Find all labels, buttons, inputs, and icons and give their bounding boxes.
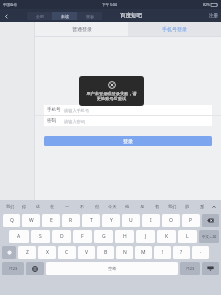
button[interactable]: 中文—英: [199, 230, 219, 243]
button[interactable]: 在: [45, 200, 60, 213]
staticText: 他: [125, 204, 130, 209]
button[interactable]: T: [82, 214, 100, 227]
button[interactable]: 注册: [209, 13, 218, 19]
button[interactable]: W: [22, 214, 40, 227]
button[interactable]: R: [62, 214, 80, 227]
button[interactable]: Change keyboard: [26, 262, 44, 275]
staticText: 我们: [168, 204, 177, 209]
button[interactable]: N: [116, 246, 133, 259]
button[interactable]: K: [157, 230, 176, 243]
staticText: 用户未登录或登录失败，请 更换账号后重试: [86, 91, 137, 101]
button[interactable]: G: [94, 230, 113, 243]
button[interactable]: More suggestions: [210, 200, 218, 213]
button[interactable]: 不: [75, 200, 90, 213]
button[interactable]: V: [78, 246, 95, 259]
button[interactable]: M: [135, 246, 152, 259]
staticText: 密码: [47, 118, 56, 124]
button[interactable]: Y: [102, 214, 120, 227]
staticText: ?123: [186, 266, 195, 271]
button[interactable]: C: [58, 246, 76, 259]
button[interactable]: S: [31, 230, 50, 243]
staticText: 空格: [108, 266, 117, 271]
staticText: ?123: [9, 266, 18, 271]
staticText: G: [102, 233, 106, 240]
button[interactable]: U: [122, 214, 140, 227]
staticText: 不: [80, 204, 85, 209]
button[interactable]: 今天: [105, 200, 120, 213]
button[interactable]: 未读: [52, 12, 77, 20]
button[interactable]: P: [182, 214, 200, 227]
button[interactable]: !: [154, 246, 171, 259]
button[interactable]: Hide keyboard: [202, 262, 219, 275]
button[interactable]: B: [97, 246, 114, 259]
button[interactable]: O: [162, 214, 180, 227]
button[interactable]: J: [136, 230, 155, 243]
staticText: !: [162, 249, 164, 256]
staticText: P: [189, 217, 193, 224]
button[interactable]: 是: [135, 200, 150, 213]
button[interactable]: 登录: [44, 136, 212, 146]
button[interactable]: 他: [120, 200, 135, 213]
button[interactable]: 我们: [3, 200, 17, 213]
staticText: T: [90, 217, 93, 224]
button[interactable]: ?123: [2, 262, 24, 275]
button[interactable]: X: [38, 246, 56, 259]
staticText: 这: [36, 204, 41, 209]
staticText: V: [85, 249, 89, 256]
button[interactable]: 这: [31, 200, 45, 213]
button[interactable]: Shift: [2, 246, 16, 259]
staticText: D: [60, 233, 64, 240]
button[interactable]: Q: [3, 214, 20, 227]
staticText: S: [39, 233, 42, 240]
staticText: 在: [50, 204, 55, 209]
staticText: J: [145, 233, 147, 240]
button[interactable]: 手机号: [47, 105, 209, 115]
staticText: 全部: [36, 14, 44, 19]
staticText: 今天: [108, 204, 117, 209]
staticText: 一: [65, 204, 70, 209]
staticText: 是: [140, 204, 145, 209]
staticText: 手机号登录: [162, 26, 187, 32]
button[interactable]: ?: [173, 246, 190, 259]
staticText: 星标: [86, 14, 94, 19]
button[interactable]: A: [9, 230, 29, 243]
button[interactable]: Z: [18, 246, 36, 259]
staticText: 你: [22, 204, 27, 209]
button[interactable]: 星标: [77, 12, 102, 20]
button[interactable]: 空格: [46, 262, 178, 275]
button[interactable]: 那: [195, 200, 210, 213]
button[interactable]: Back: [0, 10, 12, 22]
staticText: 有: [155, 204, 160, 209]
button[interactable]: 密码: [47, 116, 209, 126]
button[interactable]: D: [52, 230, 71, 243]
staticText: 登录: [123, 138, 133, 144]
staticText: R: [69, 217, 73, 224]
staticText: 中文—英: [202, 234, 217, 239]
button[interactable]: H: [115, 230, 134, 243]
button[interactable]: Backspace: [202, 214, 219, 227]
button[interactable]: 有: [150, 200, 165, 213]
staticText: 82%: [203, 2, 210, 7]
button[interactable]: 但: [90, 200, 105, 213]
staticText: X: [46, 249, 49, 256]
button[interactable]: 一: [60, 200, 75, 213]
button[interactable]: I: [142, 214, 160, 227]
button[interactable]: 就: [180, 200, 195, 213]
staticText: W: [29, 217, 34, 224]
button[interactable]: 全部: [27, 12, 52, 20]
button[interactable]: 你: [17, 200, 31, 213]
staticText: A: [17, 233, 21, 240]
staticText: ?: [180, 249, 183, 256]
button[interactable]: E: [42, 214, 60, 227]
button[interactable]: F: [73, 230, 92, 243]
button[interactable]: L: [178, 230, 197, 243]
button[interactable]: ?123: [180, 262, 200, 275]
staticText: 就: [185, 204, 190, 209]
staticText: 注册: [209, 13, 218, 19]
button[interactable]: 普通登录: [35, 22, 128, 36]
button[interactable]: 手机号登录: [128, 22, 221, 36]
button[interactable]: ·: [192, 246, 209, 259]
staticText: N: [123, 249, 127, 256]
button[interactable]: 我们: [165, 200, 180, 213]
staticText: 普通登录: [72, 26, 92, 32]
